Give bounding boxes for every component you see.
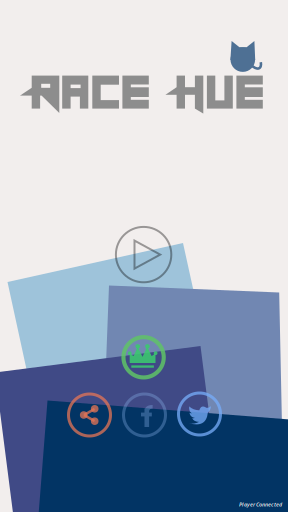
button[interactable]: Twitter: [176, 391, 222, 437]
button[interactable]: Share: [66, 392, 112, 438]
button[interactable]: Facebook: [121, 392, 167, 438]
button[interactable]: Play: [113, 224, 175, 286]
staticText: Player Connected: [239, 501, 282, 508]
button[interactable]: Leaderboard: [120, 333, 168, 381]
